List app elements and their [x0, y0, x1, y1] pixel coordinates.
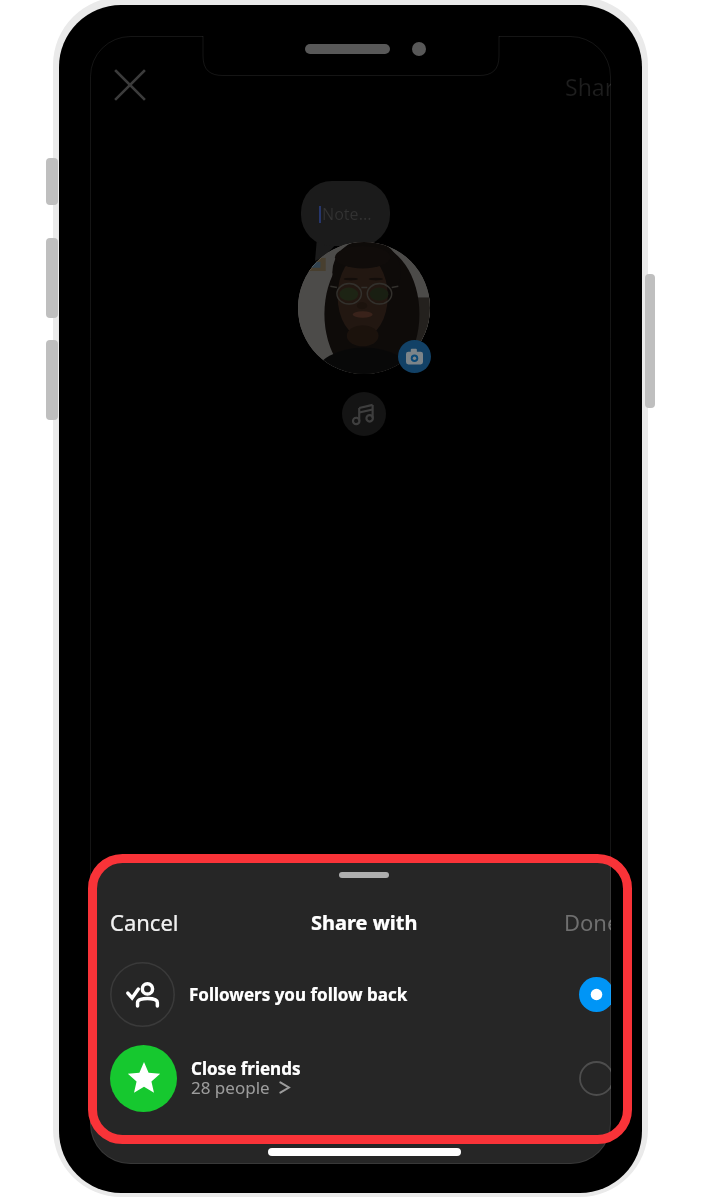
button[interactable]: Share [565, 71, 611, 102]
button[interactable]: Followers you follow back [90, 952, 611, 1036]
staticText: Share [565, 71, 611, 102]
staticText: Note... [322, 203, 372, 225]
staticText: Close friends [191, 1057, 301, 1080]
staticText: 28 people [191, 1076, 270, 1099]
staticText: Cancel [110, 907, 179, 937]
staticText: Done [564, 907, 611, 937]
button[interactable]: Note... [301, 181, 390, 246]
button[interactable]: Add music [342, 392, 386, 436]
button[interactable]: Cancel [110, 907, 179, 937]
button[interactable]: Close friends [90, 1036, 611, 1120]
staticText: Share with [311, 909, 418, 936]
button[interactable]: Change photo [398, 340, 431, 373]
button[interactable]: Done [564, 907, 611, 937]
staticText: Followers you follow back [189, 983, 408, 1006]
button[interactable]: Close [102, 57, 157, 112]
